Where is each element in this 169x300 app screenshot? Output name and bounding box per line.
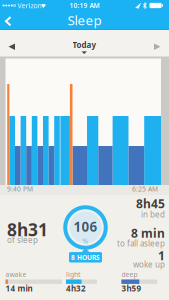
staticText: deep (121, 270, 137, 279)
staticText: 8h45 (136, 195, 165, 211)
staticText: to fall asleep (117, 238, 165, 249)
staticText: 1 (158, 247, 165, 263)
staticText: Verizon (17, 1, 41, 10)
staticText: 14 min (5, 283, 32, 294)
button[interactable]: Next day (148, 39, 166, 54)
staticText: 4h32 (66, 283, 86, 294)
staticText: Today (72, 40, 96, 50)
staticText: light (66, 270, 80, 279)
staticText: 6:25 AM (132, 185, 158, 193)
staticText: % (82, 237, 88, 245)
staticText: woke up (133, 259, 165, 270)
staticText: 8 min (131, 225, 165, 241)
staticText: 8 HOURS (71, 253, 100, 262)
staticText: 9:40 PM (7, 185, 33, 193)
staticText: of sleep (7, 235, 38, 245)
staticText: 3h59 (121, 283, 141, 294)
staticText: 106 (73, 218, 97, 235)
staticText: 10:19 AM (69, 1, 99, 10)
button[interactable]: Back (0, 11, 18, 30)
staticText: in bed (141, 209, 165, 220)
staticText: 8h31 (7, 218, 48, 241)
staticText: Sleep (67, 11, 101, 29)
staticText: awake (5, 270, 26, 279)
button[interactable]: Previous day (3, 39, 21, 54)
button[interactable]: Select date (54, 36, 114, 58)
